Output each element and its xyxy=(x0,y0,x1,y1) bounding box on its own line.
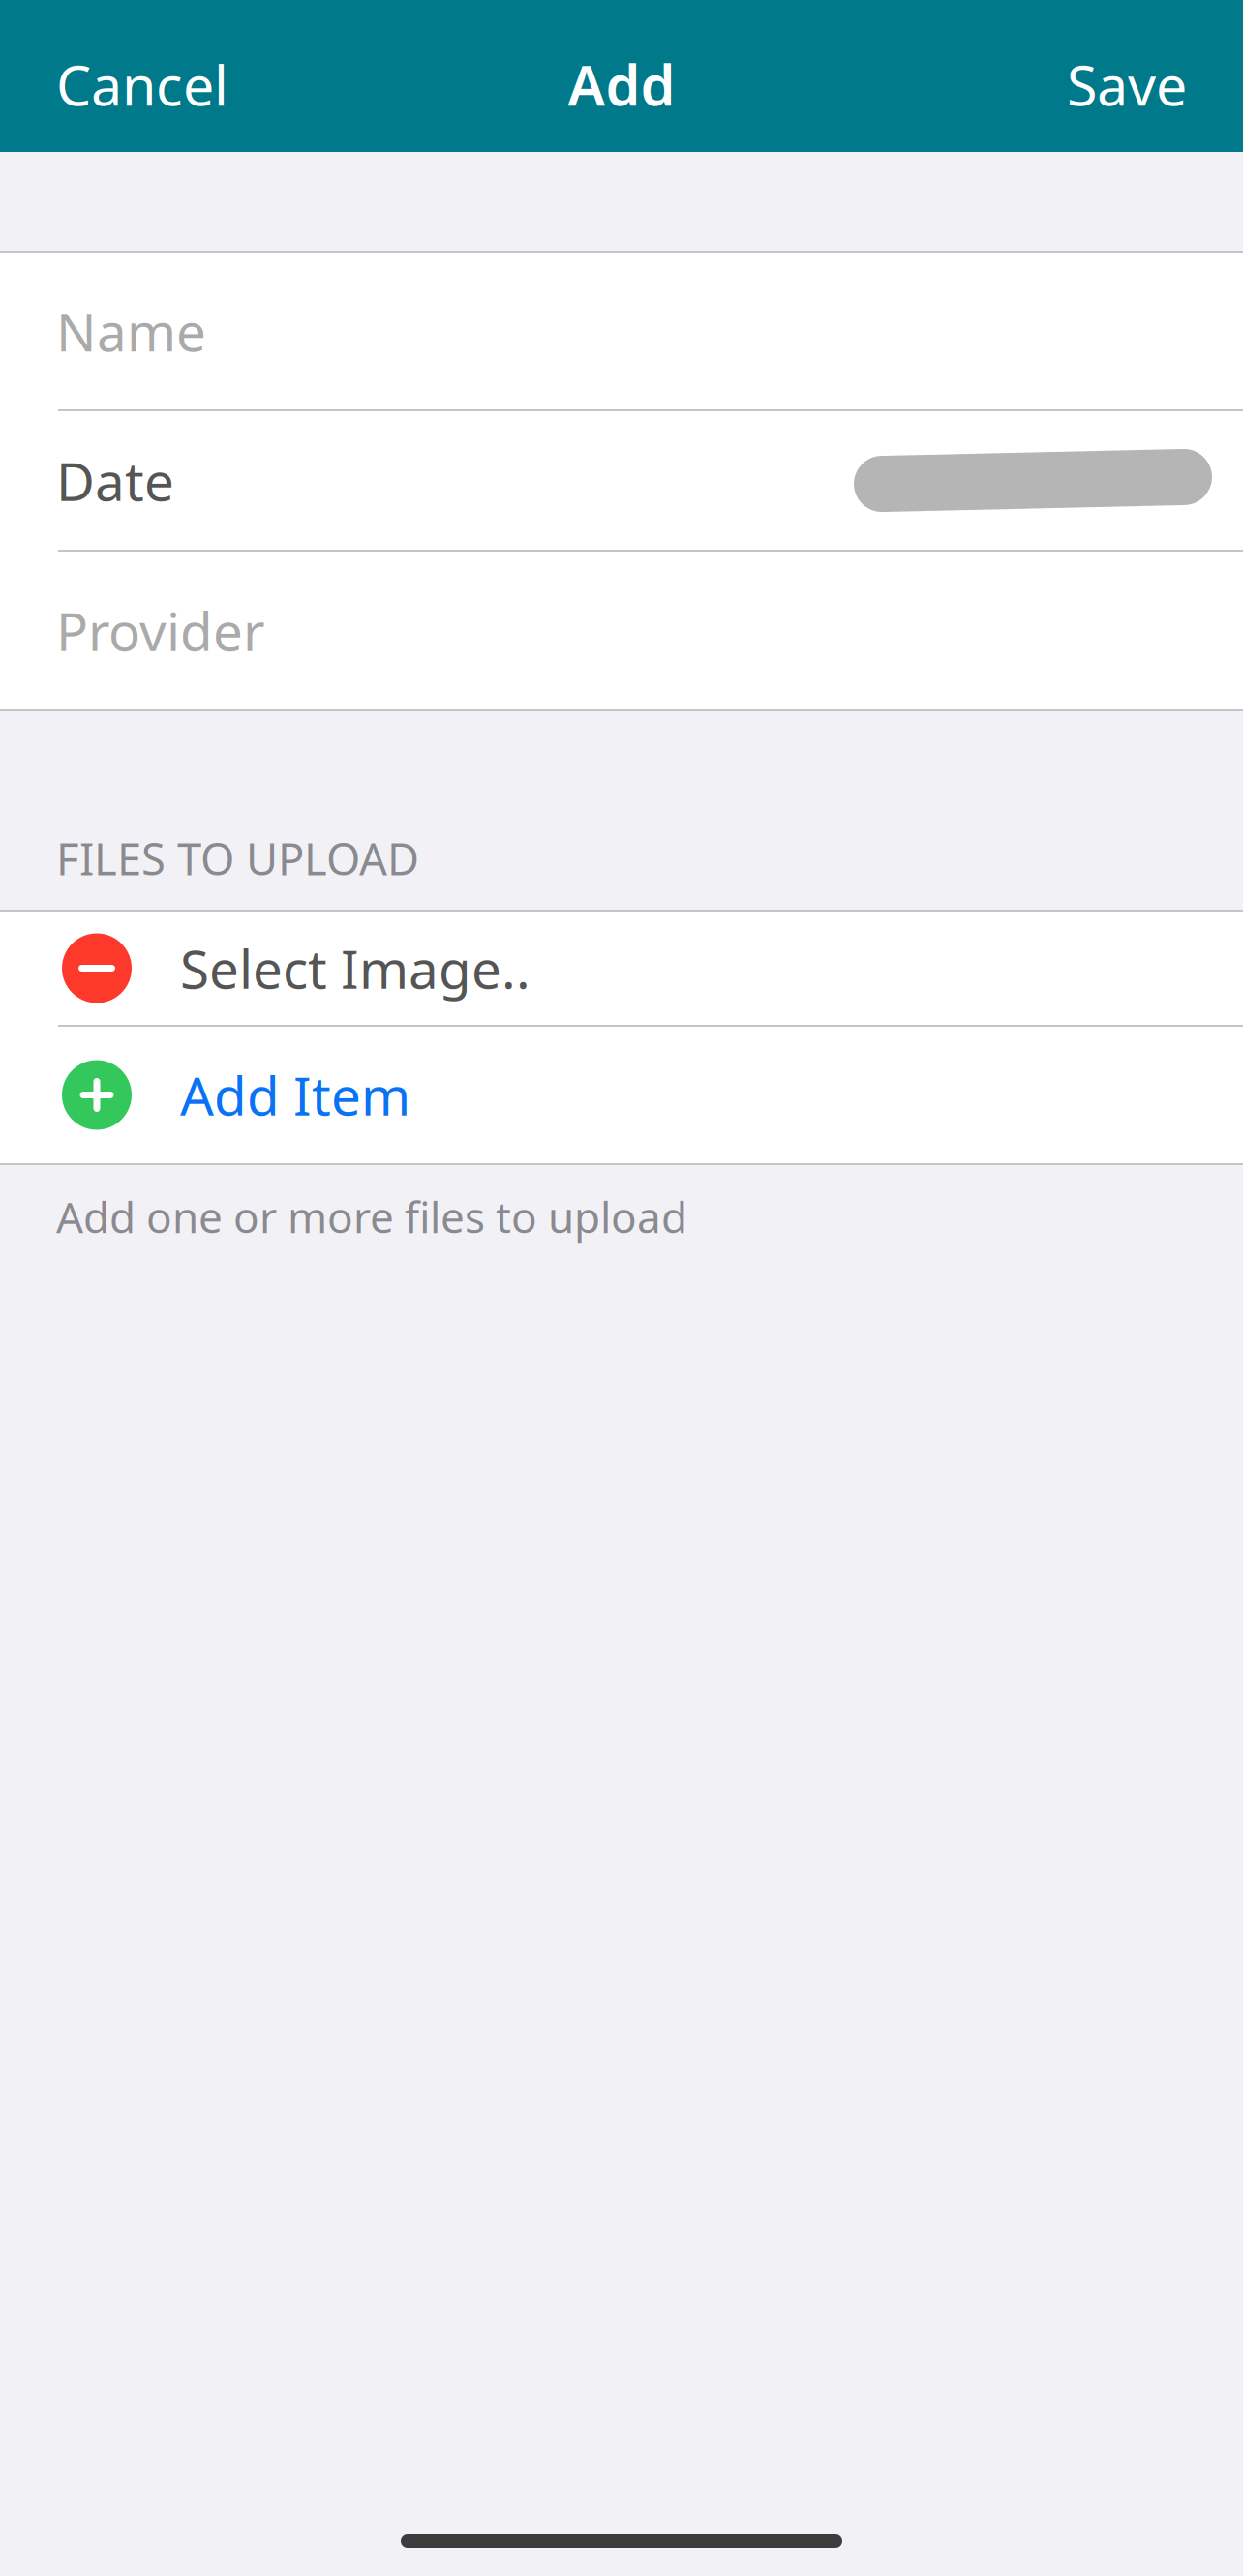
staticText: Date xyxy=(56,445,174,516)
staticText: Cancel xyxy=(56,47,228,121)
button[interactable]: Provider xyxy=(0,552,1243,709)
staticText: Add Item xyxy=(180,1060,410,1130)
staticText: Add xyxy=(568,47,675,121)
button[interactable]: Save xyxy=(1024,16,1243,152)
staticText: Add one or more files to upload xyxy=(56,1188,687,1245)
staticText: Provider xyxy=(56,595,265,666)
button[interactable]: Add Item xyxy=(0,1027,1243,1163)
staticText: Name xyxy=(56,296,206,366)
button[interactable]: Date xyxy=(0,411,1243,550)
button[interactable]: Name xyxy=(0,253,1243,409)
button[interactable]: Select Image.. xyxy=(0,912,1243,1025)
staticText: FILES TO UPLOAD xyxy=(56,829,419,887)
button[interactable]: Cancel xyxy=(0,16,271,152)
staticText: Save xyxy=(1067,47,1187,121)
staticText: Select Image.. xyxy=(180,933,531,1003)
